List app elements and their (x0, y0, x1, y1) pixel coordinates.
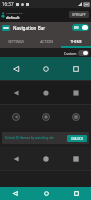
button[interactable]: Back (0, 57, 91, 80)
button[interactable]: ACTION (31, 36, 61, 46)
other: Back (0, 147, 31, 170)
button[interactable]: SETTINGS (0, 36, 31, 46)
staticText: ON (74, 26, 79, 30)
button[interactable]: Back (0, 147, 91, 170)
staticText: SETTINGS (8, 39, 24, 44)
other: Home (31, 105, 61, 128)
button[interactable]: THEME (61, 36, 91, 46)
button[interactable]: Back (0, 187, 31, 200)
other: Recents (61, 105, 91, 128)
staticText: 16:37 (2, 1, 14, 7)
other: Home (31, 81, 61, 104)
other: Recents (61, 147, 91, 170)
other: Back (0, 57, 31, 80)
staticText: Navigation Bar (6, 11, 23, 14)
staticText: ACTION (40, 39, 53, 44)
button[interactable]: Back (0, 105, 91, 128)
other: Home (31, 57, 61, 80)
button[interactable]: Back (0, 81, 91, 104)
staticText: THEME (70, 39, 82, 44)
other: Recents (61, 57, 91, 80)
other: Home (31, 147, 61, 170)
button[interactable]: OPEN APP (69, 11, 89, 18)
staticText: default (6, 15, 20, 20)
staticText: Navigation Bar (13, 25, 46, 31)
button[interactable]: Toggle navigation bar (72, 24, 89, 31)
other: Recents (61, 81, 91, 104)
other: Back (0, 105, 31, 128)
other: Back (0, 81, 31, 104)
staticText: OPEN APP (72, 13, 86, 17)
button[interactable]: Recents (61, 187, 91, 200)
staticText: Custom (64, 51, 77, 56)
button[interactable]: UNLOCK (67, 135, 87, 142)
staticText: UNLOCK (71, 137, 84, 141)
button[interactable]: Home (31, 187, 61, 200)
staticText: Unlock 20 themes by watching ads (5, 136, 54, 140)
button[interactable]: Custom (64, 50, 89, 56)
